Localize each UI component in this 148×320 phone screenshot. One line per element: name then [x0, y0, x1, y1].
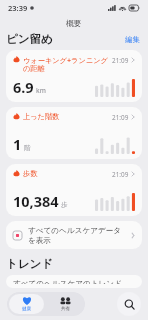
staticText: 6.9 [13, 77, 34, 97]
staticText: 1 [13, 134, 22, 154]
staticText: 概要 [66, 18, 82, 28]
staticText: 階 [24, 144, 31, 152]
staticText: 編集 [125, 35, 140, 44]
staticText: ウォーキング+ランニングの距離 [23, 55, 109, 74]
staticText: トレンド [6, 257, 54, 271]
staticText: 共有 [61, 306, 71, 312]
staticText: 健康 [22, 306, 32, 312]
staticText: 歩数 [23, 169, 109, 178]
button[interactable]: 健康 [9, 294, 44, 314]
button[interactable]: ウォーキング+ランニングの距離 [6, 50, 142, 102]
staticText: km [36, 86, 46, 95]
staticText: すべてのヘルスケアデータを表示 [28, 226, 128, 245]
staticText: 歩 [61, 201, 68, 209]
button[interactable]: すべてのヘルスケアのトレンド [6, 275, 142, 288]
staticText: 21:09 [112, 56, 129, 65]
staticText: 10,384 [13, 191, 59, 211]
staticText: ピン留め [6, 32, 53, 46]
button[interactable]: 歩数 [6, 164, 142, 216]
staticText: 上った階数 [23, 112, 109, 121]
button[interactable]: すべてのヘルスケアデータを表示 [6, 221, 142, 249]
staticText: 21:09 [112, 113, 129, 122]
staticText: 21:09 [112, 170, 129, 179]
button[interactable]: 編集 [123, 33, 142, 46]
button[interactable]: 上った階数 [6, 107, 142, 159]
staticText: 23:39 [8, 3, 28, 13]
button[interactable]: 共有 [46, 292, 85, 316]
staticText: すべてのヘルスケアのトレンド [13, 279, 122, 284]
button[interactable]: 検索 [117, 292, 141, 316]
